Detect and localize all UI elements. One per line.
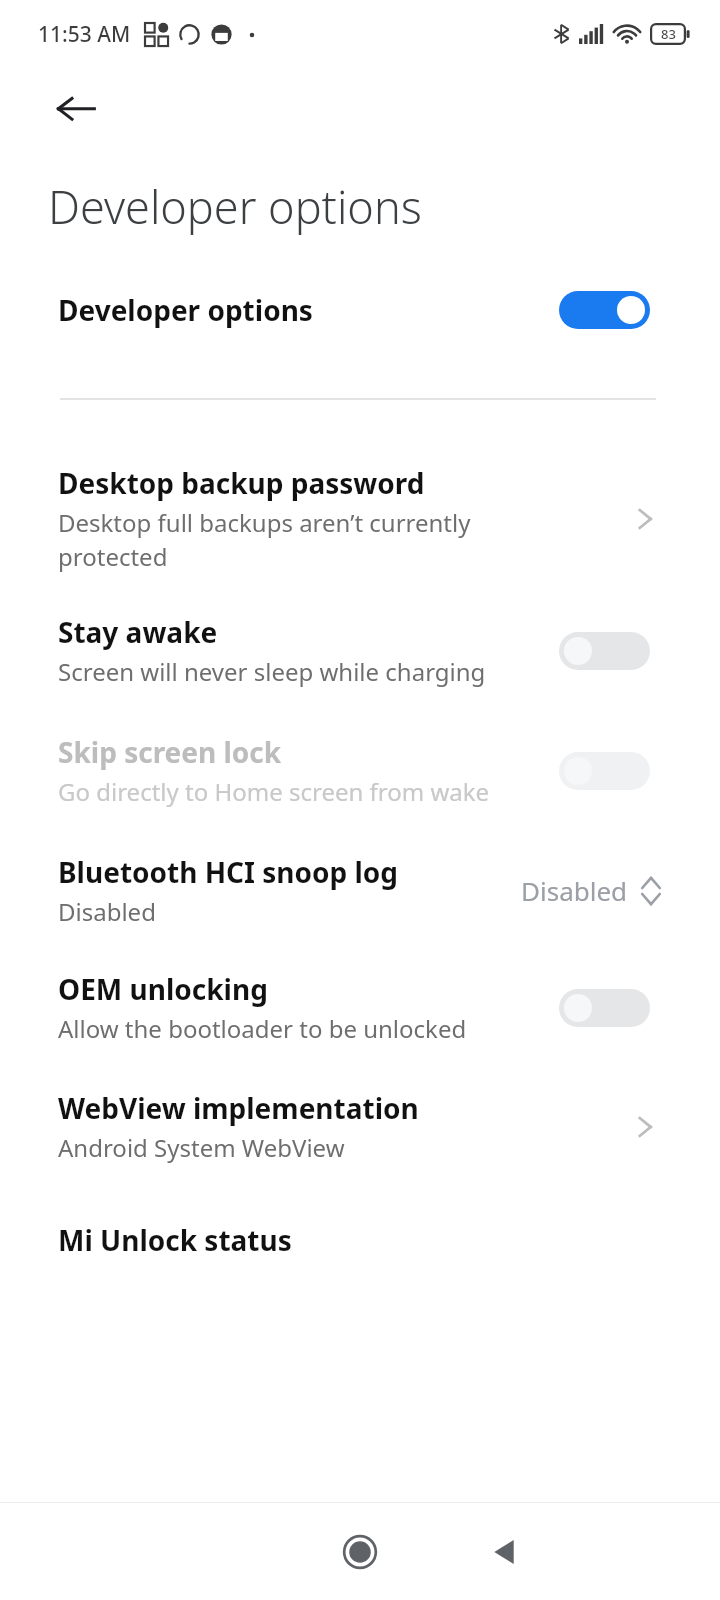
staticText: Desktop full backups aren’t currently pr… bbox=[58, 506, 471, 573]
staticText: Skip screen lock bbox=[58, 733, 282, 771]
button[interactable]: Back bbox=[480, 1503, 720, 1600]
staticText: Android System WebView bbox=[58, 1131, 345, 1164]
staticText: Disabled bbox=[58, 895, 156, 928]
staticText: Mi Unlock status bbox=[58, 1221, 292, 1259]
staticText: Disabled bbox=[521, 873, 628, 908]
button[interactable]: Desktop backup password bbox=[0, 462, 720, 575]
button[interactable]: Stay awake bbox=[0, 613, 720, 688]
button[interactable]: Mi Unlock status bbox=[0, 1221, 720, 1261]
button[interactable]: Back bbox=[36, 68, 116, 148]
button[interactable]: WebView implementation bbox=[0, 1087, 720, 1166]
button[interactable]: OEM unlocking bbox=[0, 970, 720, 1045]
button[interactable]: Skip screen lock bbox=[0, 733, 720, 808]
staticText: Developer options bbox=[48, 176, 422, 237]
staticText: Developer options bbox=[58, 291, 559, 329]
staticText: Go directly to Home screen from wake bbox=[58, 775, 490, 808]
button[interactable]: Bluetooth HCI snoop log bbox=[0, 853, 720, 928]
staticText: 11:53 AM bbox=[38, 20, 131, 49]
staticText: Bluetooth HCI snoop log bbox=[58, 853, 399, 891]
staticText: OEM unlocking bbox=[58, 970, 268, 1008]
staticText: WebView implementation bbox=[58, 1089, 419, 1127]
staticText: 83 bbox=[661, 25, 676, 43]
staticText: Desktop backup password bbox=[58, 464, 425, 502]
staticText: Allow the bootloader to be unlocked bbox=[58, 1012, 467, 1045]
button[interactable]: Developer options bbox=[0, 279, 720, 341]
staticText: Stay awake bbox=[58, 613, 218, 651]
staticText: Screen will never sleep while charging bbox=[58, 655, 486, 688]
button[interactable]: Home bbox=[240, 1503, 480, 1600]
